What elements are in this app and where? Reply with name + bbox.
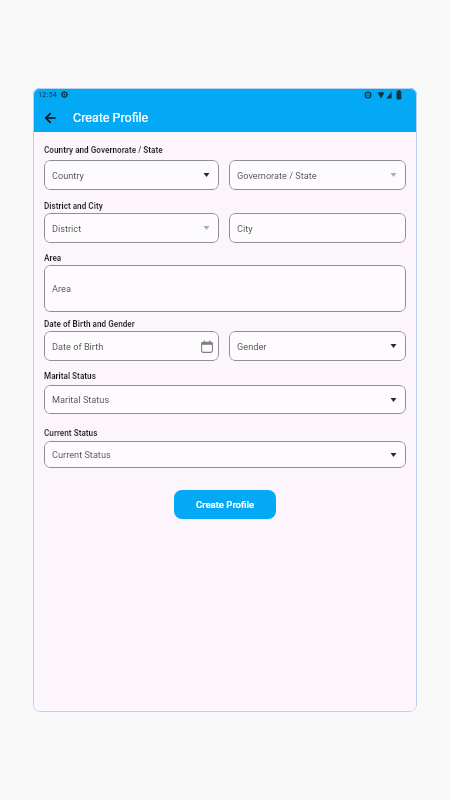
staticText: Date of Birth and Gender [44, 319, 135, 329]
button[interactable]: Area [44, 265, 406, 312]
staticText: Area [44, 253, 62, 263]
button[interactable]: Marital Status [44, 385, 406, 414]
staticText: Current Status [52, 449, 111, 460]
button[interactable]: Governorate / State [229, 160, 406, 190]
button[interactable]: Gender [229, 331, 406, 361]
staticText: District and City [44, 201, 103, 211]
staticText: 12:54 [38, 90, 58, 99]
staticText: Governorate / State [237, 170, 317, 181]
button[interactable] [39, 107, 61, 128]
staticText: Area [52, 283, 71, 294]
staticText: Country [52, 170, 84, 181]
staticText: City [237, 223, 253, 234]
staticText: Country and Governorate / State [44, 145, 163, 155]
button[interactable]: Create Profile [174, 490, 276, 519]
button[interactable]: City [229, 213, 406, 243]
staticText: Gender [237, 341, 267, 352]
staticText: Date of Birth [52, 341, 104, 352]
staticText: Marital Status [44, 371, 96, 381]
staticText: District [52, 223, 82, 234]
button[interactable]: Date of Birth [44, 331, 219, 361]
staticText: Create Profile [73, 110, 149, 125]
button[interactable]: Country [44, 160, 219, 190]
staticText: Create Profile [196, 499, 255, 510]
staticText: Marital Status [52, 394, 110, 405]
button[interactable]: Current Status [44, 441, 406, 468]
staticText: Current Status [44, 428, 98, 438]
button[interactable]: District [44, 213, 219, 243]
